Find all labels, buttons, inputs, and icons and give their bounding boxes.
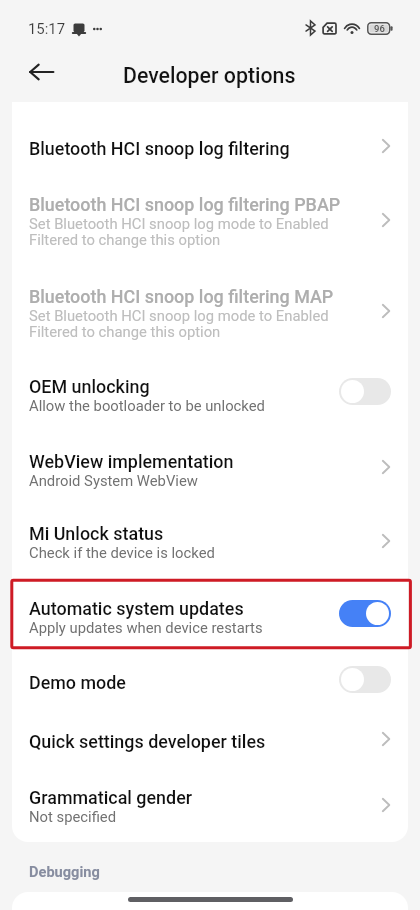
button[interactable]: Bluetooth HCI snoop log filtering <box>12 118 408 174</box>
staticText: Check if the device is locked <box>29 544 215 561</box>
staticText: Not specified <box>29 808 117 825</box>
staticText: Set Bluetooth HCI snoop log mode to Enab… <box>29 215 329 249</box>
staticText: Automatic system updates <box>29 598 244 619</box>
button[interactable]: Switch off <box>339 378 391 405</box>
staticText: Set Bluetooth HCI snoop log mode to Enab… <box>29 307 329 341</box>
staticText: Developer options <box>123 63 296 88</box>
button[interactable]: Quick settings developer tiles <box>12 711 408 767</box>
staticText: Bluetooth HCI snoop log filtering PBAP <box>29 194 341 215</box>
button[interactable]: Switch on <box>339 600 391 627</box>
staticText: Debugging <box>29 863 100 880</box>
staticText: Grammatical gender <box>29 787 193 808</box>
staticText: 96 <box>374 23 385 34</box>
button[interactable]: Mi Unlock status <box>12 503 408 578</box>
staticText: WebView implementation <box>29 451 234 472</box>
button[interactable]: Demo mode <box>12 652 408 711</box>
button[interactable]: Switch off <box>339 666 391 693</box>
staticText: Android System WebView <box>29 472 198 489</box>
staticText: Demo mode <box>29 672 126 693</box>
staticText: Bluetooth HCI snoop log filtering MAP <box>29 286 334 307</box>
staticText: 15:17 <box>28 20 66 37</box>
button[interactable]: Automatic system updates <box>12 578 408 652</box>
button[interactable]: Back <box>18 54 54 90</box>
staticText: Allow the bootloader to be unlocked <box>29 397 265 414</box>
staticText: Mi Unlock status <box>29 523 164 544</box>
staticText: OEM unlocking <box>29 376 150 397</box>
button[interactable]: Grammatical gender <box>12 767 408 842</box>
staticText: Bluetooth HCI snoop log filtering <box>29 138 290 159</box>
button[interactable]: Bluetooth HCI snoop log filtering MAP <box>12 266 408 356</box>
button[interactable]: OEM unlocking <box>12 356 408 431</box>
button[interactable]: WebView implementation <box>12 431 408 503</box>
staticText: Apply updates when device restarts <box>29 619 263 636</box>
button[interactable]: Bluetooth HCI snoop log filtering PBAP <box>12 174 408 266</box>
staticText: Quick settings developer tiles <box>29 731 266 752</box>
